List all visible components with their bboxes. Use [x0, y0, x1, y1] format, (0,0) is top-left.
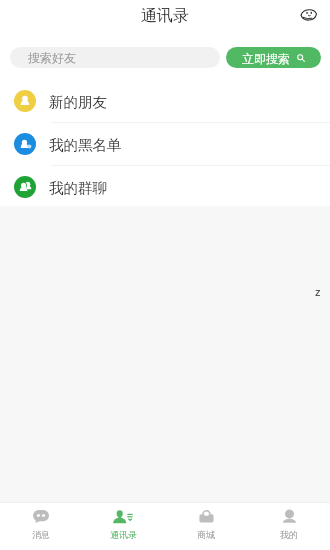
staticText: 我的黑名单 [49, 136, 122, 154]
staticText: 新的朋友 [49, 93, 107, 111]
staticText: 通讯录 [110, 529, 137, 540]
staticText: 通讯录 [141, 6, 189, 26]
button[interactable]: 消息 [0, 503, 82, 550]
button[interactable]: Emoji status [296, 3, 320, 27]
staticText: 商城 [197, 529, 215, 540]
button[interactable]: 搜索好友 [10, 47, 220, 68]
staticText: 我的群聊 [49, 179, 107, 197]
button[interactable]: 商城 [164, 503, 247, 550]
button[interactable]: 我的群聊 [0, 166, 330, 208]
staticText: 我的 [280, 529, 298, 540]
staticText: 立即搜索 [242, 51, 290, 66]
button[interactable]: 新的朋友 [0, 80, 330, 122]
button[interactable]: 通讯录 [82, 503, 164, 550]
button[interactable]: 我的 [247, 503, 330, 550]
staticText: z [315, 284, 321, 300]
staticText: 消息 [32, 529, 50, 540]
button[interactable]: 立即搜索 [226, 47, 321, 68]
staticText: 搜索好友 [28, 50, 76, 65]
button[interactable]: 我的黑名单 [0, 123, 330, 165]
